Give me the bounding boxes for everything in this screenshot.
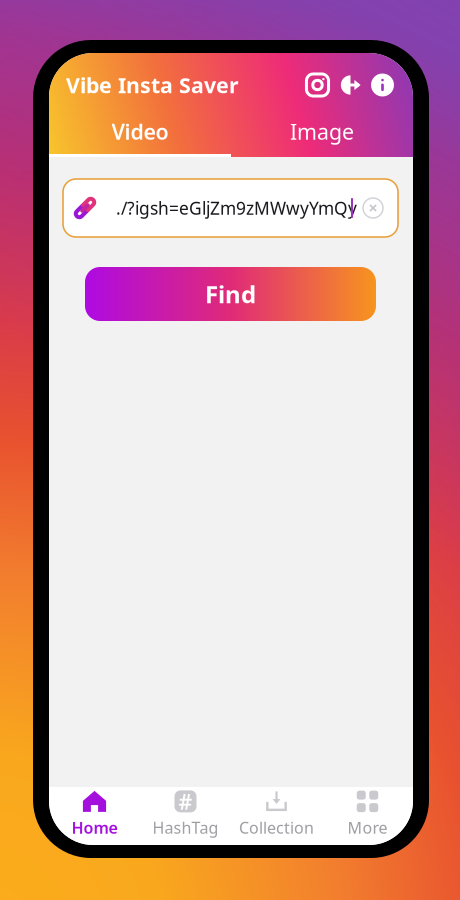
button[interactable]: # [140,785,231,843]
staticText: # [178,787,192,815]
staticText: Vibe Insta Saver [66,71,239,99]
staticText: Image [290,117,354,146]
button[interactable]: Video [49,109,231,154]
staticText: More [347,817,387,838]
button[interactable]: Log out [334,68,367,101]
staticText: Collection [239,817,314,838]
staticText: ./?igsh=eGljZm9zMWwyYmQy [116,196,357,219]
button[interactable]: Find [85,267,376,321]
staticText: Video [111,117,168,146]
staticText: Home [71,817,117,838]
button[interactable]: Image [231,109,413,154]
button[interactable]: Info [367,68,398,101]
staticText: HashTag [152,817,218,838]
button[interactable]: Collection [231,785,322,843]
button[interactable]: More [322,785,413,843]
button[interactable]: Open Instagram [301,68,334,101]
staticText: Find [205,278,256,310]
button[interactable]: Home [49,785,140,843]
